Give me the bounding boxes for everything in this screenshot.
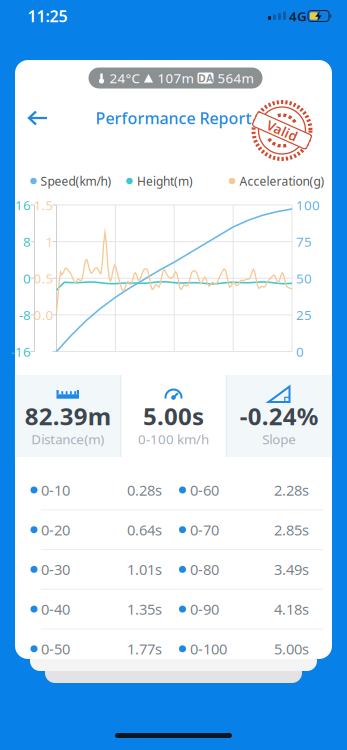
staticText: 0-40 <box>41 599 70 619</box>
staticText: 82.39m <box>25 400 111 432</box>
staticText: Speed(km/h) <box>40 173 111 189</box>
staticText: 0-50 <box>41 639 70 659</box>
staticText: Valid <box>266 122 298 139</box>
staticText: 75 <box>296 233 312 250</box>
staticText: 0 <box>23 269 31 287</box>
staticText: Height(m) <box>137 173 193 189</box>
staticText: 0.5 <box>33 269 53 287</box>
staticText: 0.28s <box>127 480 162 500</box>
staticText: -0.24% <box>240 400 319 432</box>
staticText: 0-80 <box>190 560 219 579</box>
staticText: 5.00s <box>143 400 204 432</box>
staticText: 0-70 <box>190 520 219 539</box>
staticText: 0.64s <box>127 520 162 539</box>
staticText: 1.35s <box>127 599 162 619</box>
staticText: 50 <box>296 269 312 287</box>
staticText: 107m <box>157 69 193 87</box>
staticText: 8 <box>23 233 31 250</box>
staticText: 0-30 <box>41 560 70 579</box>
staticText: 100 <box>296 196 320 214</box>
staticText: 11:25 <box>27 5 67 27</box>
staticText: 0-100 <box>190 639 227 659</box>
staticText: 1.01s <box>127 560 162 579</box>
staticText: Acceleration(g) <box>239 173 324 189</box>
staticText: 24°C <box>109 69 139 87</box>
staticText: 5.00s <box>274 639 309 659</box>
staticText: DA <box>198 71 213 85</box>
staticText: 2.85s <box>274 520 309 539</box>
staticText: 0-10 <box>41 480 70 500</box>
staticText: 2.28s <box>274 480 309 500</box>
staticText: 4.18s <box>274 599 309 619</box>
staticText: Distance(m) <box>31 430 104 448</box>
staticText: 0 <box>296 343 304 360</box>
staticText: 1 <box>45 233 53 250</box>
staticText: Slope <box>262 430 296 448</box>
staticText: 25 <box>296 306 312 324</box>
staticText: 0-60 <box>190 480 219 500</box>
staticText: 16 <box>15 196 31 214</box>
staticText: 0-90 <box>190 599 219 619</box>
staticText: 1.5 <box>33 196 53 214</box>
staticText: -8 <box>19 306 31 324</box>
staticText: 564m <box>217 69 253 87</box>
staticText: 1.77s <box>127 639 162 659</box>
staticText: -16 <box>11 343 31 360</box>
staticText: 3.49s <box>274 560 309 579</box>
staticText: 4G <box>289 7 307 25</box>
staticText: 0-100 km/h <box>138 430 209 448</box>
button[interactable]: Back <box>18 103 58 133</box>
staticText: 0-20 <box>41 520 70 539</box>
staticText: 0.0 <box>33 306 53 324</box>
staticText: Performance Report <box>95 107 251 129</box>
